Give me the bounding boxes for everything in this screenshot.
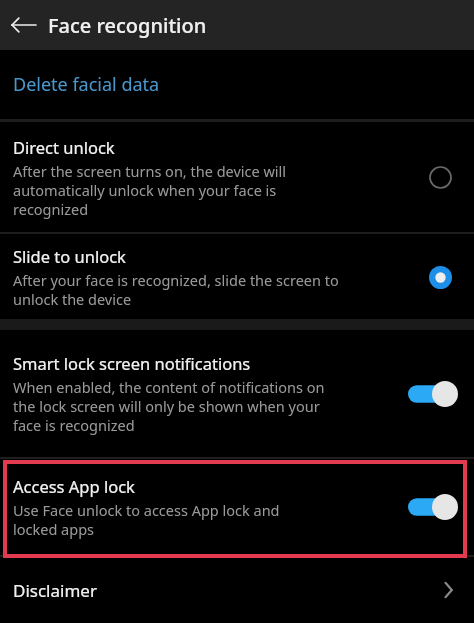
button[interactable]: Delete facial data <box>0 50 474 119</box>
staticText: Slide to unlock <box>13 245 126 267</box>
staticText: Smart lock screen notifications <box>13 352 251 374</box>
button[interactable] <box>418 155 462 199</box>
staticText: Disclaimer <box>13 579 441 602</box>
staticText: Direct unlock <box>13 136 115 158</box>
button[interactable] <box>404 488 462 526</box>
staticText: Use Face unlock to access App lock and l… <box>13 500 280 539</box>
button[interactable]: Slide to unlock, selected <box>0 234 474 319</box>
button[interactable]: Smart lock screen notifications, on <box>0 330 474 457</box>
staticText: Access App lock <box>13 475 135 497</box>
button[interactable]: Direct unlock, not selected <box>0 122 474 232</box>
staticText: After the screen turns on, the device wi… <box>13 161 287 219</box>
button[interactable]: Access App lock, on <box>0 459 474 555</box>
button[interactable]: Back <box>0 1 48 49</box>
staticText: After your face is recognized, slide the… <box>13 270 339 309</box>
button[interactable]: Disclaimer <box>0 557 474 623</box>
button[interactable] <box>418 255 462 299</box>
staticText: When enabled, the content of notificatio… <box>13 377 325 435</box>
staticText: Face recognition <box>48 12 207 39</box>
staticText: Delete facial data <box>13 72 160 97</box>
button[interactable] <box>404 375 462 413</box>
